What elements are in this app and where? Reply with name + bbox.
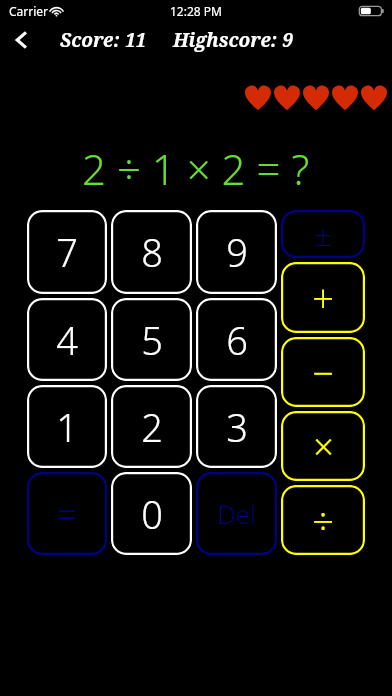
button[interactable]: −: [281, 337, 365, 407]
staticText: +: [312, 272, 334, 324]
staticText: 8: [141, 226, 163, 278]
button[interactable]: 9: [196, 210, 277, 294]
button[interactable]: 6: [196, 298, 277, 381]
button[interactable]: 8: [111, 210, 192, 294]
staticText: ÷: [312, 494, 334, 546]
button[interactable]: =: [27, 472, 107, 555]
button[interactable]: Del: [196, 472, 277, 555]
button[interactable]: ÷: [281, 485, 365, 555]
staticText: 12:28 PM: [170, 3, 222, 19]
button[interactable]: 3: [196, 385, 277, 468]
button[interactable]: 5: [111, 298, 192, 381]
button[interactable]: +: [281, 262, 365, 333]
staticText: Carrier: [9, 3, 49, 19]
button[interactable]: 1: [27, 385, 107, 468]
button[interactable]: 2: [111, 385, 192, 468]
staticText: =: [57, 491, 77, 537]
button[interactable]: ×: [281, 411, 365, 481]
staticText: 6: [226, 314, 248, 366]
staticText: 3: [226, 401, 248, 453]
staticText: Score: 11: [60, 27, 147, 53]
staticText: 9: [226, 226, 248, 278]
button[interactable]: Back: [0, 22, 44, 58]
staticText: Highscore: 9: [173, 27, 293, 53]
staticText: ×: [313, 422, 334, 471]
button[interactable]: 4: [27, 298, 107, 381]
staticText: Del: [217, 496, 256, 531]
button[interactable]: ±: [281, 210, 365, 258]
staticText: 4: [56, 314, 78, 366]
staticText: 5: [141, 314, 163, 366]
staticText: ±: [314, 214, 332, 255]
staticText: 2 ÷ 1 × 2 = ?: [82, 140, 310, 188]
button[interactable]: 7: [27, 210, 107, 294]
button[interactable]: 0: [111, 472, 192, 555]
staticText: 2: [141, 401, 163, 453]
staticText: 0: [141, 488, 163, 540]
staticText: 7: [56, 226, 78, 278]
staticText: −: [312, 346, 334, 398]
staticText: 1: [56, 401, 78, 453]
